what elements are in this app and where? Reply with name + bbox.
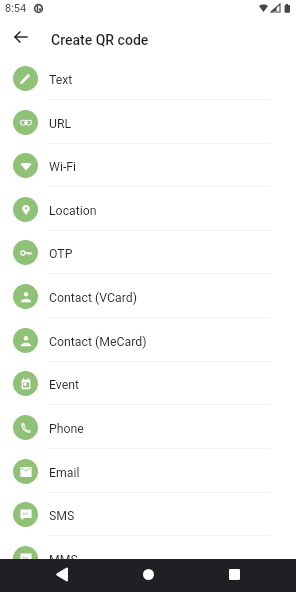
button[interactable]: Back [6,23,34,51]
staticText: Contact (VCard) [49,291,138,305]
button[interactable]: Back [48,560,76,588]
staticText: Email [49,466,80,480]
button[interactable]: Email [0,449,296,493]
button[interactable]: Text [0,56,296,100]
button[interactable]: MMS [0,536,296,580]
staticText: 8:54 [5,2,27,15]
button[interactable]: Recents [220,560,248,588]
button[interactable]: Phone [0,405,296,449]
other: Notification [34,4,43,13]
staticText: Wi-Fi [49,160,77,174]
staticText: MMS [49,553,78,567]
staticText: Phone [49,422,84,436]
staticText: URL [49,117,72,131]
staticText: Create QR code [51,32,149,48]
staticText: OTP [49,247,73,261]
staticText: Contact (MeCard) [49,335,147,349]
button[interactable]: Wi-Fi [0,143,296,187]
staticText: SMS [49,509,75,523]
staticText: Location [49,204,97,218]
button[interactable]: SMS [0,492,296,536]
button[interactable]: URL [0,100,296,144]
button[interactable]: Location [0,187,296,231]
button[interactable]: Event [0,361,296,405]
button[interactable]: Contact (MeCard) [0,318,296,362]
staticText: Event [49,378,80,392]
button[interactable]: Contact (VCard) [0,274,296,318]
staticText: Text [49,73,73,87]
button[interactable]: OTP [0,230,296,274]
button[interactable]: Home [134,560,162,588]
